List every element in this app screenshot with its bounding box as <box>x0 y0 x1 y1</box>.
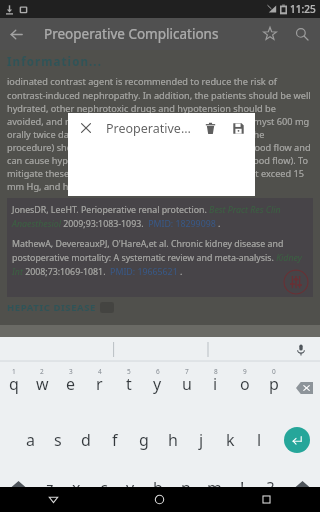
staticText: z <box>46 477 54 499</box>
staticText: f <box>112 429 118 451</box>
staticText: h <box>168 429 178 451</box>
staticText: 7 <box>185 367 189 376</box>
button[interactable]: 3 <box>56 362 85 414</box>
staticText: c <box>100 477 108 499</box>
button[interactable]: n <box>172 466 200 510</box>
staticText: 6 <box>156 367 160 376</box>
button[interactable]: Voice input <box>291 340 311 360</box>
staticText: ? <box>267 477 274 499</box>
staticText: Preoperative Complications <box>44 25 254 43</box>
staticText: 5 <box>127 367 131 376</box>
button[interactable]: 8 <box>201 362 230 414</box>
staticText: ! <box>240 477 245 499</box>
staticText: q <box>9 373 19 395</box>
staticText: JonesDR, LeeHT. Perioperative renal prot… <box>12 204 308 229</box>
button[interactable]: z <box>36 466 63 510</box>
button[interactable]: f <box>100 414 129 466</box>
staticText: n <box>181 477 191 499</box>
staticText: b <box>153 477 163 499</box>
staticText: p <box>269 373 279 395</box>
staticText: o <box>240 373 250 395</box>
staticText: s <box>54 429 62 451</box>
button[interactable]: s <box>44 414 72 466</box>
button[interactable]: 4 <box>85 362 114 414</box>
staticText: g <box>139 429 149 451</box>
button[interactable]: k <box>216 414 245 466</box>
staticText: 3 <box>69 367 73 376</box>
button[interactable]: h <box>158 414 187 466</box>
staticText: 0 <box>272 367 276 376</box>
button[interactable]: g <box>129 414 158 466</box>
button[interactable]: Save <box>225 115 251 141</box>
button[interactable]: a <box>16 414 44 466</box>
button[interactable]: Shift left <box>0 466 36 510</box>
staticText: w <box>36 373 49 395</box>
button[interactable]: d <box>72 414 100 466</box>
button[interactable]: Back <box>0 18 32 50</box>
button[interactable]: b <box>144 466 172 510</box>
button[interactable]: Home <box>106 487 213 512</box>
button[interactable]: ? <box>256 466 284 510</box>
button[interactable]: 7 <box>172 362 201 414</box>
staticText: 11:25 <box>290 2 316 16</box>
staticText: Information... <box>7 54 103 70</box>
button[interactable]: Enter <box>274 414 320 466</box>
staticText: a <box>26 429 35 451</box>
button[interactable]: Delete <box>197 115 223 141</box>
staticText: 8 <box>214 367 218 376</box>
button[interactable]: Recent apps <box>213 487 320 512</box>
button[interactable]: c <box>90 466 117 510</box>
staticText: y <box>153 373 162 395</box>
staticText: x <box>72 477 81 499</box>
staticText: 9 <box>243 367 247 376</box>
staticText: d <box>81 429 91 451</box>
button[interactable]: 0 <box>259 362 288 414</box>
button[interactable]: 6 <box>143 362 172 414</box>
staticText: iodinated contrast agent is recommended … <box>7 75 313 192</box>
button[interactable]: Favorite <box>254 18 286 50</box>
staticText: Preoperative… <box>106 120 197 137</box>
button[interactable]: m <box>200 466 228 510</box>
staticText: v <box>126 477 135 499</box>
staticText: m <box>207 477 222 499</box>
button[interactable]: Back <box>0 487 106 512</box>
staticText: e <box>66 373 76 395</box>
staticText: i <box>213 373 218 395</box>
button[interactable]: l <box>245 414 274 466</box>
button[interactable]: 2 <box>28 362 56 414</box>
button[interactable]: ! <box>228 466 256 510</box>
button[interactable]: 9 <box>230 362 259 414</box>
staticText: k <box>226 429 235 451</box>
button[interactable]: v <box>117 466 144 510</box>
staticText: t <box>126 373 132 395</box>
staticText: HEPATIC DISEASE <box>7 301 96 314</box>
button[interactable]: 5 <box>114 362 143 414</box>
staticText: 2 <box>40 367 44 376</box>
button[interactable]: Search <box>286 18 318 50</box>
staticText: MathewA, DevereauxPJ, O'HareA,et al. Chr… <box>12 238 308 277</box>
button[interactable]: x <box>63 466 90 510</box>
staticText: 4 <box>98 367 102 376</box>
button[interactable]: Close <box>74 116 98 140</box>
button[interactable]: Backspace <box>288 362 320 414</box>
button[interactable]: j <box>187 414 216 466</box>
staticText: j <box>199 429 204 451</box>
staticText: l <box>257 429 262 451</box>
staticText: u <box>182 373 192 395</box>
button[interactable]: Shift right <box>284 466 320 510</box>
button[interactable]: Adjust settings <box>283 269 309 295</box>
staticText: 1 <box>12 367 16 376</box>
staticText: r <box>96 373 103 395</box>
button[interactable]: 1 <box>0 362 28 414</box>
